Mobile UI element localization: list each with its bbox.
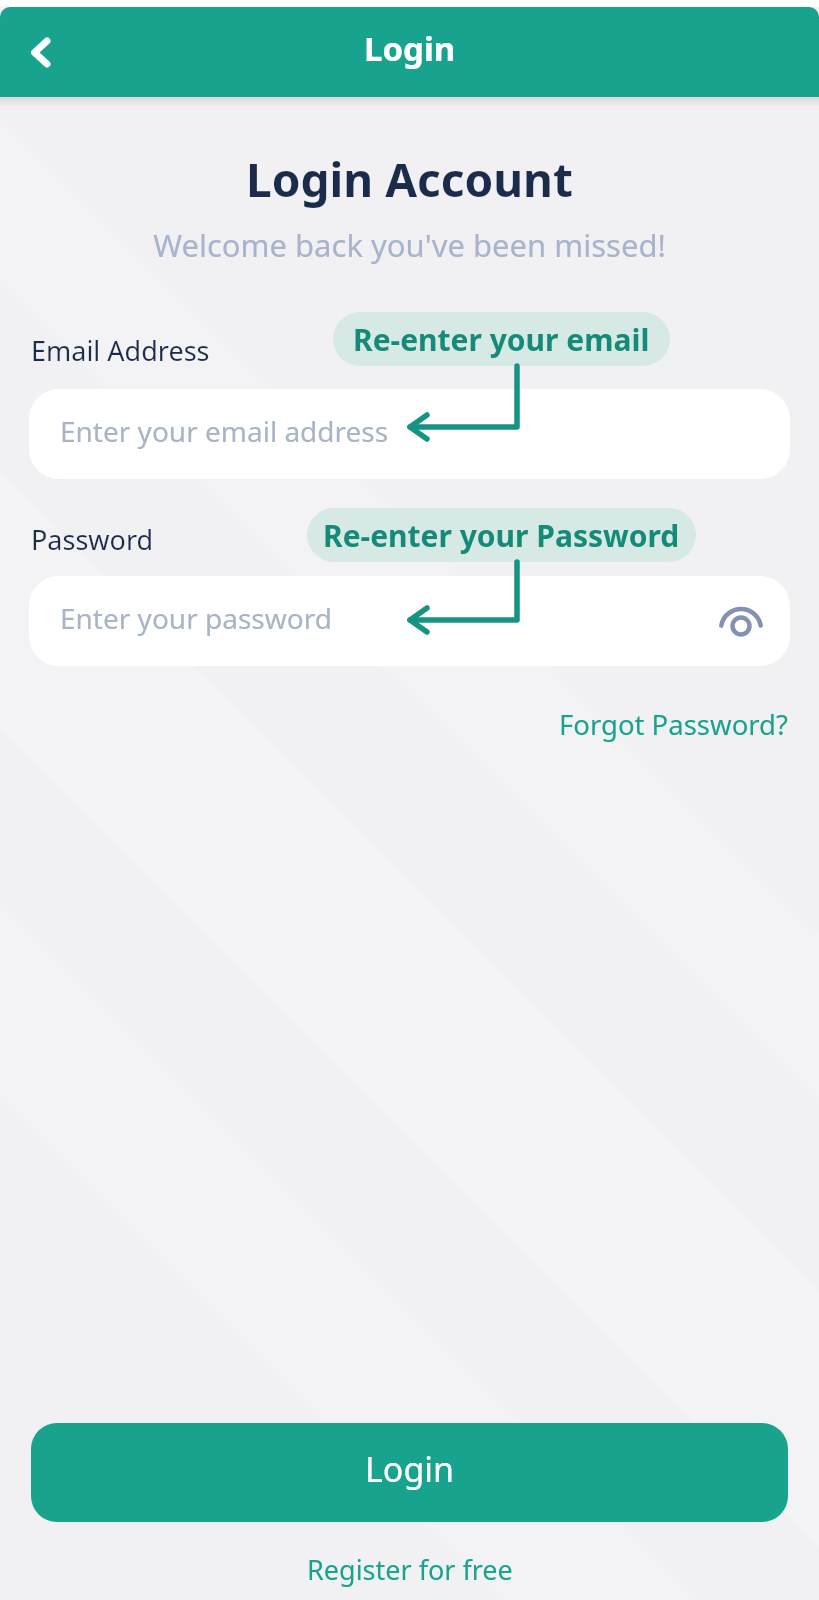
button[interactable]: Register for free — [307, 1551, 513, 1588]
staticText: Login — [365, 1446, 455, 1492]
staticText: Login Account — [0, 148, 819, 211]
button[interactable]: Forgot Password? — [559, 706, 788, 743]
button[interactable]: Login — [31, 1423, 788, 1522]
button[interactable]: Enter your email address — [29, 389, 790, 479]
staticText: Login — [364, 26, 456, 71]
staticText: Re-enter your Password — [323, 515, 680, 556]
staticText: Email Address — [31, 332, 210, 369]
staticText: Re-enter your email — [353, 319, 650, 360]
button[interactable]: Enter your password — [29, 576, 790, 666]
button[interactable] — [8, 7, 72, 97]
button[interactable] — [711, 596, 771, 656]
staticText: Welcome back you've been missed! — [0, 224, 819, 266]
staticText: Password — [31, 521, 154, 558]
staticText: Enter your password — [60, 599, 332, 637]
staticText: Enter your email address — [60, 412, 389, 450]
